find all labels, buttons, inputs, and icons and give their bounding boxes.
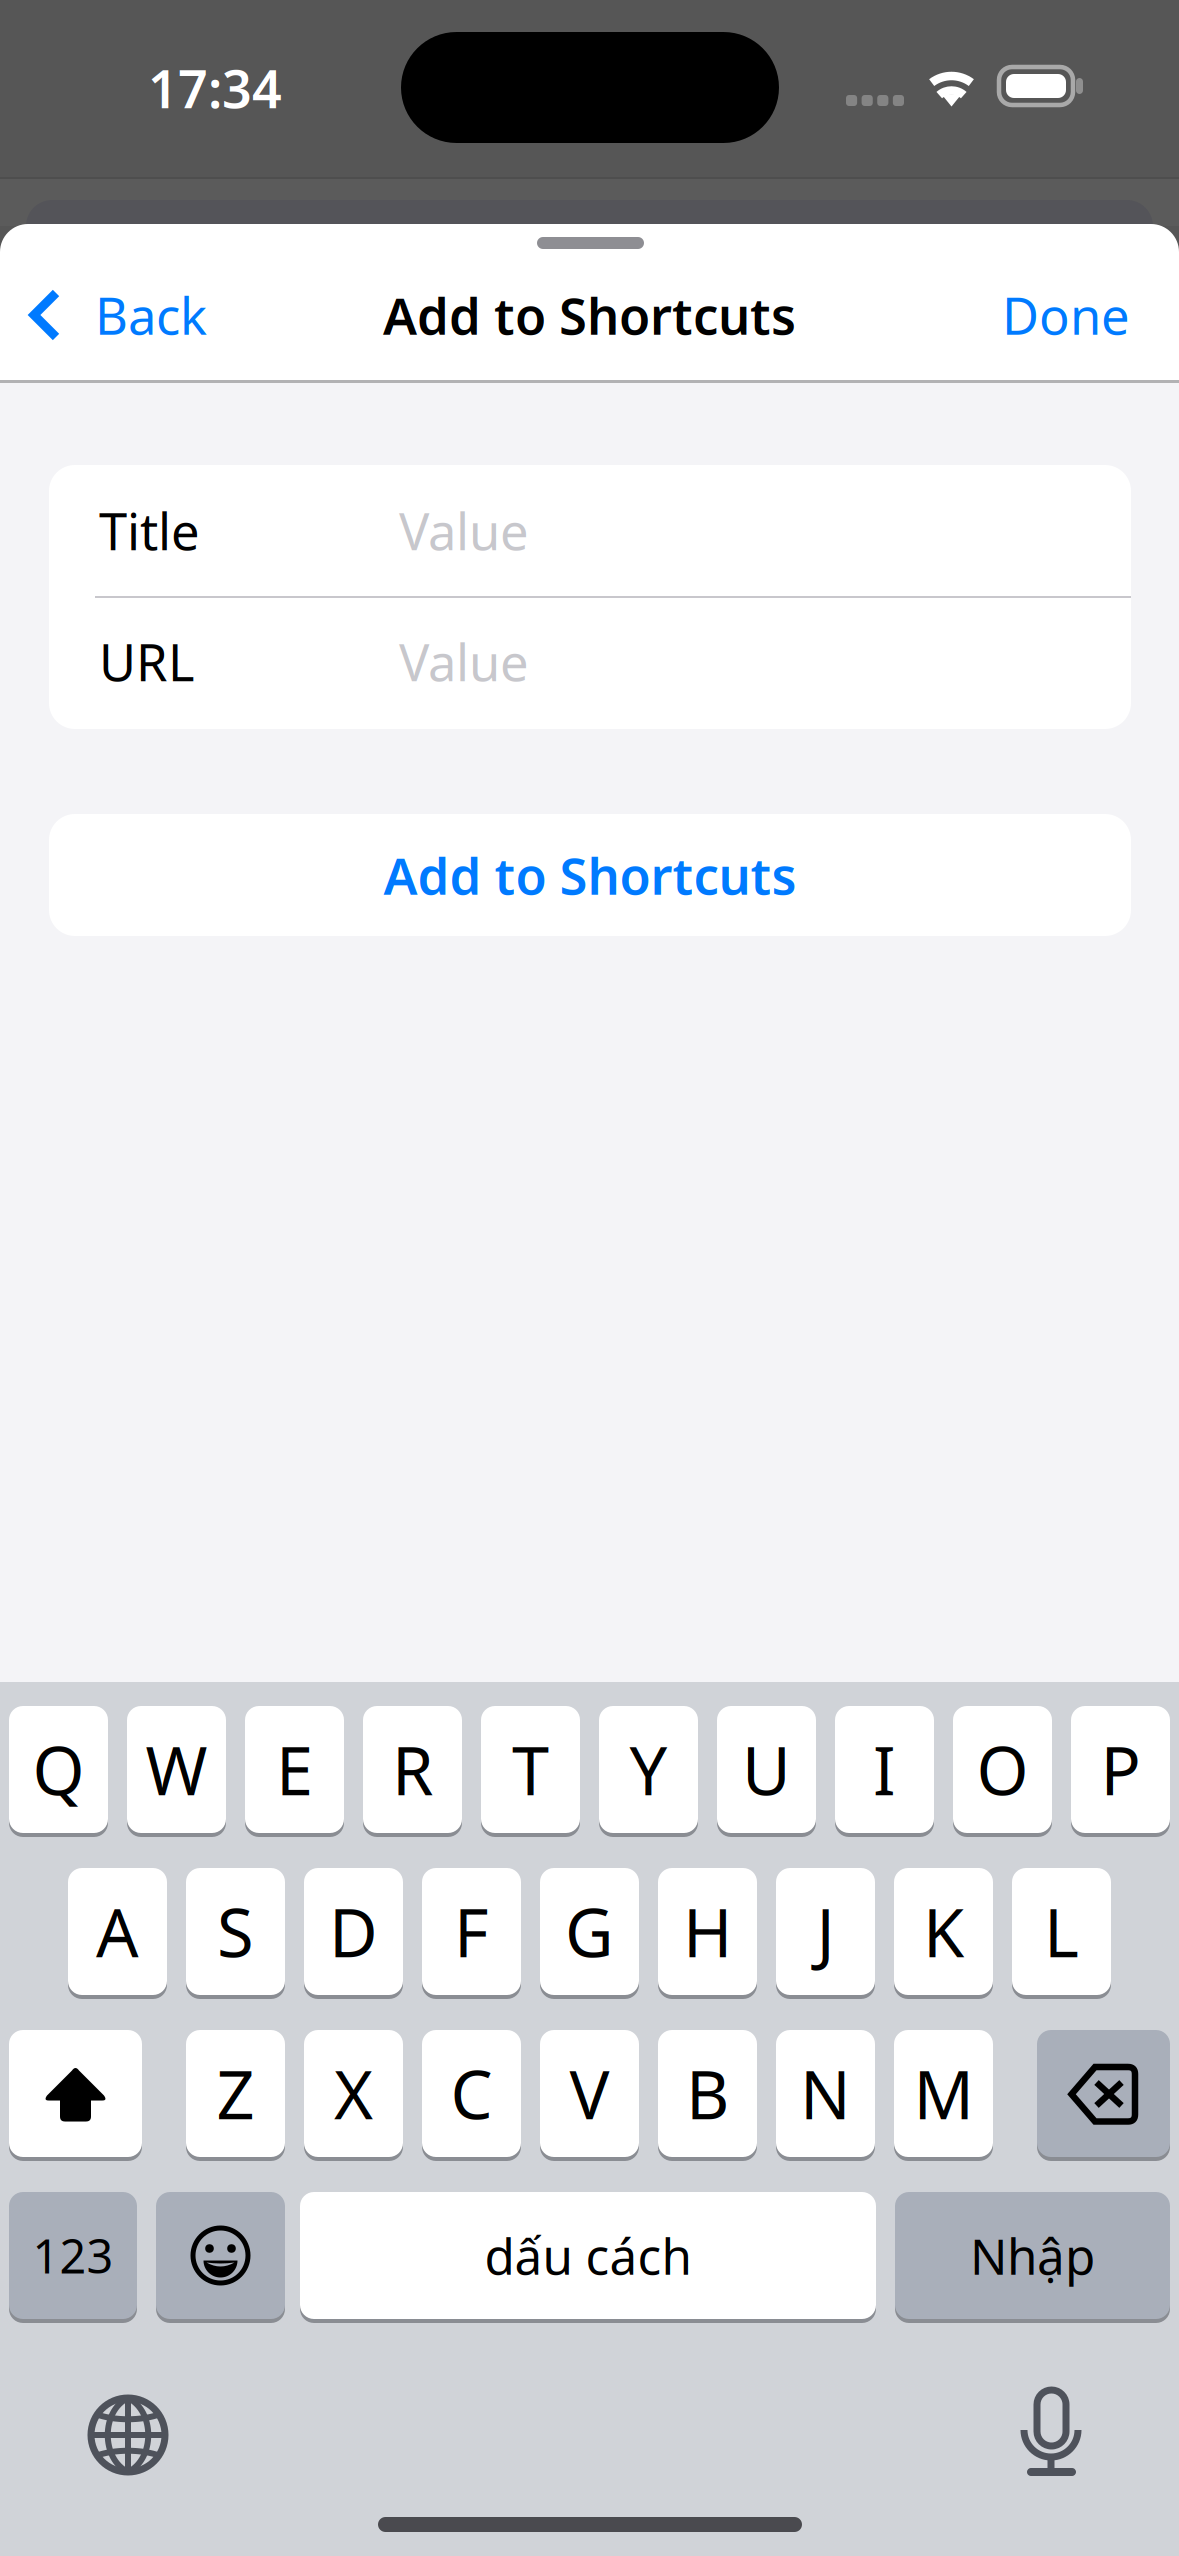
button[interactable]: V: [0, 0, 1179, 2556]
button[interactable]: C: [0, 0, 1179, 2556]
staticText: Q: [32, 1725, 84, 1814]
button[interactable]: G: [0, 0, 1179, 2556]
staticText: R: [392, 1725, 433, 1814]
button[interactable]: J: [0, 0, 1179, 2556]
staticText: B: [686, 2049, 729, 2138]
button[interactable]: X: [0, 0, 1179, 2556]
staticText: Done: [1002, 281, 1130, 349]
staticText: P: [1100, 1725, 1140, 1814]
button[interactable]: M: [0, 0, 1179, 2556]
staticText: S: [217, 1887, 254, 1976]
button[interactable]: B: [0, 0, 1179, 2556]
button[interactable]: Add to Shortcuts: [49, 814, 1131, 936]
staticText: J: [816, 1887, 834, 1976]
staticText: X: [334, 2049, 373, 2138]
button[interactable]: Title: [49, 465, 1131, 596]
staticText: N: [800, 2049, 851, 2138]
button[interactable]: Dictation: [1023, 2390, 1080, 2476]
staticText: W: [145, 1725, 207, 1814]
button[interactable]: Back: [0, 260, 280, 370]
button[interactable]: W: [0, 0, 1179, 2556]
staticText: G: [565, 1887, 614, 1976]
button[interactable]: N: [0, 0, 1179, 2556]
staticText: O: [976, 1725, 1028, 1814]
staticText: M: [913, 2049, 973, 2138]
staticText: D: [329, 1887, 378, 1976]
button[interactable]: Delete: [0, 0, 1179, 2556]
button[interactable]: Q: [0, 0, 1179, 2556]
button[interactable]: Shift: [0, 0, 1179, 2556]
button[interactable]: L: [0, 0, 1179, 2556]
staticText: Y: [629, 1725, 667, 1814]
staticText: E: [276, 1725, 313, 1814]
button[interactable]: P: [0, 0, 1179, 2556]
staticText: Back: [95, 281, 207, 349]
staticText: C: [450, 2049, 492, 2138]
staticText: A: [96, 1887, 139, 1976]
staticText: dấu cách: [484, 2223, 691, 2288]
button[interactable]: Nhập: [0, 0, 1179, 2556]
button[interactable]: E: [0, 0, 1179, 2556]
staticText: Value: [399, 497, 529, 564]
staticText: URL: [99, 628, 195, 695]
staticText: Value: [399, 628, 529, 695]
button[interactable]: F: [0, 0, 1179, 2556]
button[interactable]: URL: [49, 596, 1131, 727]
button[interactable]: O: [0, 0, 1179, 2556]
button[interactable]: R: [0, 0, 1179, 2556]
staticText: L: [1044, 1887, 1079, 1976]
button[interactable]: K: [0, 0, 1179, 2556]
staticText: Title: [99, 497, 200, 564]
staticText: Nhập: [970, 2223, 1095, 2288]
button[interactable]: H: [0, 0, 1179, 2556]
button[interactable]: Emoji: [0, 0, 1179, 2556]
button[interactable]: I: [0, 0, 1179, 2556]
button[interactable]: A: [0, 0, 1179, 2556]
staticText: Z: [216, 2049, 254, 2138]
staticText: H: [683, 1887, 732, 1976]
button[interactable]: 123: [0, 0, 1179, 2556]
button[interactable]: U: [0, 0, 1179, 2556]
button[interactable]: Y: [0, 0, 1179, 2556]
staticText: T: [512, 1725, 549, 1814]
button[interactable]: Z: [0, 0, 1179, 2556]
button[interactable]: T: [0, 0, 1179, 2556]
staticText: K: [923, 1887, 964, 1976]
button[interactable]: Next keyboard: [88, 2395, 168, 2475]
staticText: F: [454, 1887, 489, 1976]
button[interactable]: dấu cách: [0, 0, 1179, 2556]
button[interactable]: Done: [939, 260, 1179, 370]
staticText: Add to Shortcuts: [383, 841, 796, 909]
button[interactable]: D: [0, 0, 1179, 2556]
button[interactable]: S: [0, 0, 1179, 2556]
staticText: 123: [32, 2224, 113, 2286]
staticText: U: [742, 1725, 791, 1814]
staticText: V: [569, 2049, 609, 2138]
staticText: 17:34: [148, 53, 282, 123]
staticText: Add to Shortcuts: [383, 281, 796, 349]
staticText: I: [873, 1725, 896, 1814]
